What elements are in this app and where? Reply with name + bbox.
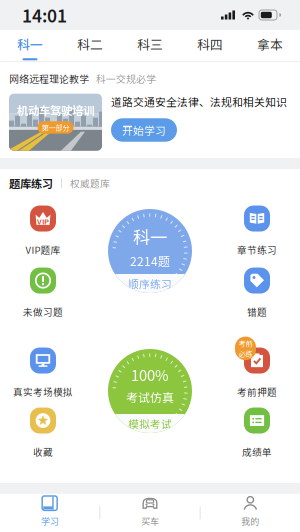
staticText: 考试仿真 xyxy=(126,388,174,406)
button[interactable]: 错题 xyxy=(214,267,300,318)
button[interactable]: 顺序练习 xyxy=(108,209,192,293)
staticText: VIP题库 xyxy=(25,242,60,256)
button[interactable]: 章节练习 xyxy=(214,205,300,256)
staticText: 考前必练 xyxy=(238,338,252,359)
button[interactable]: 科三 xyxy=(120,30,180,61)
staticText: 拿本 xyxy=(257,35,283,53)
button[interactable]: 考前必练 xyxy=(214,347,300,398)
staticText: 真实考场模拟 xyxy=(13,384,73,398)
staticText: 未做习题 xyxy=(23,304,63,318)
button[interactable]: 收藏 xyxy=(0,407,86,458)
button[interactable]: 买车 xyxy=(100,494,200,532)
staticText: 我的 xyxy=(241,514,259,527)
button[interactable]: 模拟考试 xyxy=(108,349,192,433)
staticText: 科一 xyxy=(133,224,167,249)
staticText: 100% xyxy=(131,364,169,385)
staticText: 权威题库 xyxy=(70,176,110,190)
staticText: 科二 xyxy=(77,35,103,53)
button[interactable]: 真实考场模拟 xyxy=(0,347,86,398)
staticText: 买车 xyxy=(141,514,159,527)
staticText: 成绩单 xyxy=(242,444,272,458)
button[interactable]: 未做习题 xyxy=(0,267,86,318)
staticText: 网络远程理论教学 xyxy=(9,71,89,86)
button[interactable]: 科一 xyxy=(0,30,60,61)
staticText: 章节练习 xyxy=(237,242,277,256)
staticText: 模拟考试 xyxy=(128,416,172,431)
staticText: 顺序练习 xyxy=(128,276,172,291)
button[interactable]: 拿本 xyxy=(240,30,300,61)
button[interactable]: 开始学习 xyxy=(111,118,177,142)
staticText: 科一交规必学 xyxy=(96,71,156,86)
button[interactable]: 成绩单 xyxy=(214,407,300,458)
staticText: 科四 xyxy=(197,35,223,53)
staticText: VIP xyxy=(37,216,49,226)
staticText: 考前押题 xyxy=(237,384,277,398)
staticText: 学习 xyxy=(41,514,59,527)
staticText: 2214题 xyxy=(130,252,170,269)
button[interactable]: 我的 xyxy=(201,494,300,532)
staticText: 第一部分 xyxy=(41,122,69,133)
staticText: 14:01 xyxy=(22,2,67,28)
button[interactable]: 科四 xyxy=(180,30,240,61)
staticText: 错题 xyxy=(247,304,267,318)
staticText: 机动车驾驶培训 xyxy=(17,102,94,118)
button[interactable]: VIP xyxy=(0,205,86,256)
staticText: 开始学习 xyxy=(122,122,166,138)
button[interactable]: 科二 xyxy=(60,30,120,61)
staticText: 科一 xyxy=(17,35,43,53)
staticText: 道路交通安全法律、法规和相关知识 xyxy=(111,94,287,109)
staticText: 科三 xyxy=(137,35,163,53)
button[interactable]: 学习 xyxy=(0,494,99,532)
staticText: 收藏 xyxy=(33,444,53,458)
staticText: 题库练习 xyxy=(9,175,53,191)
